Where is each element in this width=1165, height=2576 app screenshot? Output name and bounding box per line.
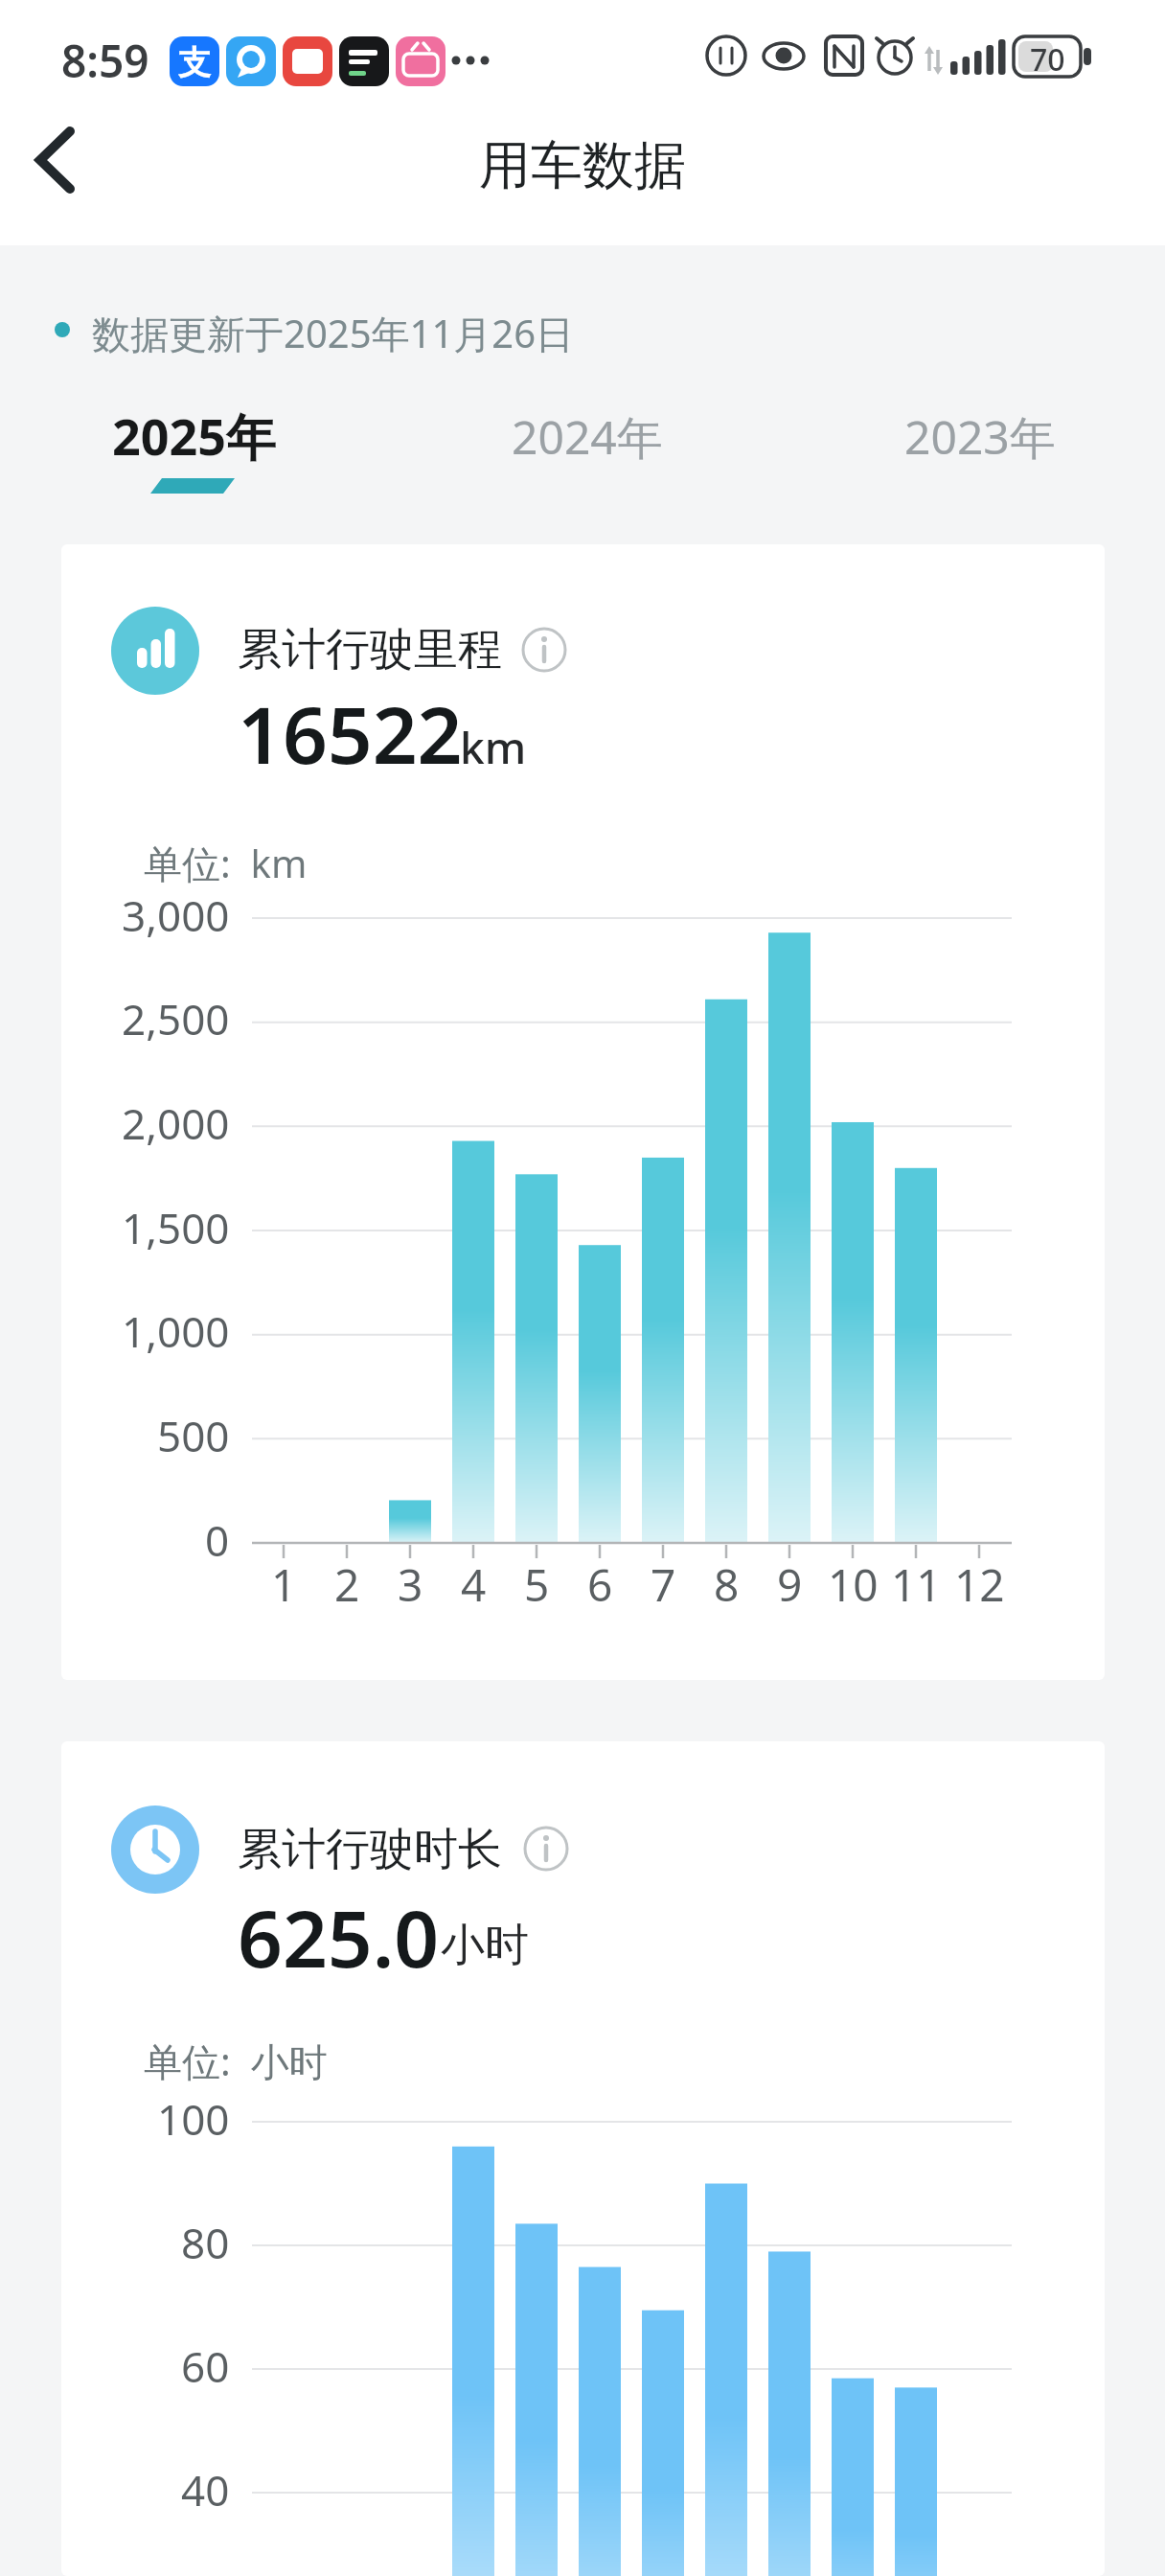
staticText: 单位: 小时: [144, 2035, 328, 2087]
staticText: 2: [334, 1554, 360, 1615]
staticText: 40: [181, 2461, 230, 2518]
staticText: 数据更新于2025年11月26日: [92, 307, 575, 359]
staticText: 100: [157, 2090, 230, 2148]
staticText: 支: [178, 42, 211, 83]
staticText: 0: [205, 1511, 230, 1569]
staticText: 3,000: [122, 886, 230, 944]
staticText: km: [460, 717, 527, 777]
staticText: 70: [1030, 38, 1065, 80]
button[interactable]: 2023年: [899, 395, 1062, 491]
button[interactable]: 2025年: [105, 393, 287, 498]
staticText: 7: [651, 1554, 676, 1615]
staticText: 用车数据: [479, 133, 686, 198]
staticText: 11: [891, 1554, 942, 1615]
staticText: 2,000: [122, 1094, 230, 1152]
staticText: 5: [524, 1554, 550, 1615]
staticText: 10: [828, 1554, 879, 1615]
staticText: 2025年: [112, 402, 276, 470]
staticText: 8:59: [61, 31, 149, 91]
staticText: 6: [587, 1554, 613, 1615]
staticText: 500: [157, 1407, 230, 1464]
staticText: 累计行驶里程: [238, 622, 502, 678]
button[interactable]: [19, 110, 105, 211]
staticText: 单位: km: [144, 837, 308, 889]
staticText: 2024年: [512, 405, 663, 469]
button[interactable]: [519, 1822, 573, 1875]
staticText: 3: [398, 1554, 423, 1615]
button[interactable]: 2024年: [506, 395, 669, 491]
button[interactable]: [517, 623, 571, 677]
staticText: 小时: [441, 1918, 529, 1973]
staticText: 2023年: [904, 405, 1056, 469]
staticText: 8: [714, 1554, 740, 1615]
staticText: 1,000: [122, 1302, 230, 1360]
staticText: 累计行驶时长: [238, 1822, 502, 1877]
staticText: 16522: [238, 679, 463, 787]
staticText: 80: [181, 2214, 230, 2271]
staticText: 625.0: [238, 1883, 440, 1990]
staticText: 2,500: [122, 990, 230, 1047]
staticText: 12: [954, 1554, 1005, 1615]
staticText: 1,500: [122, 1199, 230, 1256]
staticText: 4: [461, 1554, 487, 1615]
staticText: 1: [271, 1554, 297, 1615]
staticText: 60: [181, 2337, 230, 2395]
staticText: 9: [777, 1554, 803, 1615]
